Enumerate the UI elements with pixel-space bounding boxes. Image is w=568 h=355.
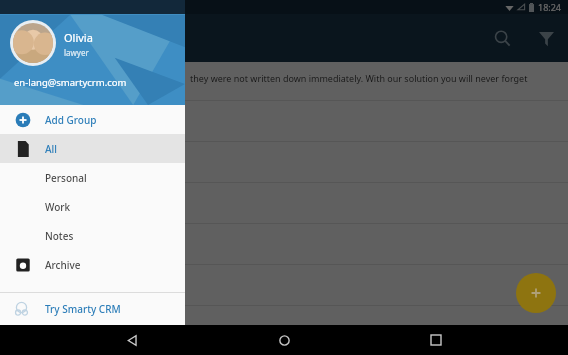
staticText: Archive — [45, 258, 81, 272]
staticText: Olivia — [64, 30, 93, 45]
button[interactable]: Personal — [0, 163, 185, 192]
button[interactable]: All — [0, 134, 185, 163]
button[interactable]: Add Group — [0, 105, 185, 134]
button[interactable]: Search — [480, 16, 524, 60]
button[interactable]: Archive — [0, 250, 185, 279]
staticText: Try Smarty CRM — [45, 302, 121, 316]
button[interactable]: Back — [112, 325, 152, 355]
staticText: 18:24 — [538, 1, 562, 13]
staticText: All — [45, 142, 57, 156]
button[interactable]: Try Smarty CRM — [0, 293, 185, 325]
button[interactable]: Filter — [524, 16, 568, 60]
button[interactable]: Add — [516, 273, 556, 313]
staticText: Work — [45, 200, 71, 214]
staticText: lawyer — [64, 47, 89, 58]
staticText: en-lang@smartycrm.com — [14, 76, 127, 89]
button[interactable]: Notes — [0, 221, 185, 250]
staticText: Personal — [45, 171, 87, 185]
staticText: they were not written down immediately. … — [190, 72, 568, 84]
button[interactable]: Home — [264, 325, 304, 355]
button[interactable]: Profile photo — [10, 20, 56, 66]
staticText: Add Group — [45, 113, 97, 127]
button[interactable]: Recents — [416, 325, 456, 355]
staticText: Notes — [45, 229, 74, 243]
button[interactable]: Work — [0, 192, 185, 221]
